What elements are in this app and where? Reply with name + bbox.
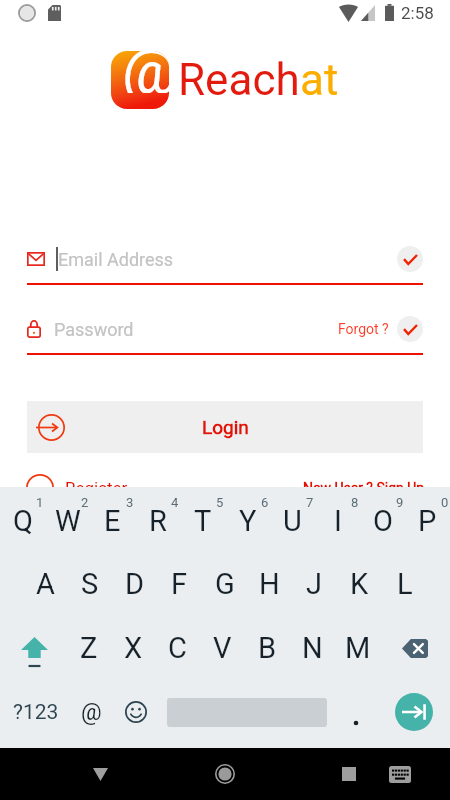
staticText: Y	[239, 504, 257, 538]
button[interactable]: T	[180, 489, 225, 552]
button[interactable]: Login	[27, 401, 423, 453]
staticText: at	[300, 54, 339, 106]
button[interactable]: I	[315, 489, 360, 552]
staticText: 7	[306, 495, 314, 510]
staticText: G	[215, 567, 235, 601]
staticText: F	[171, 567, 188, 601]
staticText: C	[168, 631, 187, 665]
staticText: Register	[65, 478, 128, 498]
staticText: 9	[396, 495, 404, 510]
staticText: P	[418, 504, 437, 538]
button[interactable]: P	[405, 489, 450, 552]
button[interactable]: K	[337, 552, 382, 616]
staticText: T	[194, 504, 212, 538]
button[interactable]: E	[90, 489, 135, 552]
staticText: 2	[81, 495, 89, 510]
button[interactable]: C	[155, 616, 200, 680]
button[interactable]: Emoji	[111, 680, 160, 744]
staticText: 1	[36, 495, 44, 510]
button[interactable]: F	[157, 552, 202, 616]
staticText: 3	[126, 495, 134, 510]
button[interactable]: Shift	[0, 616, 67, 680]
staticText: R	[149, 504, 167, 538]
button[interactable]: A	[23, 552, 67, 616]
staticText: N	[302, 631, 323, 665]
button[interactable]	[334, 680, 378, 744]
button[interactable]: N	[290, 616, 335, 680]
staticText: 4	[171, 495, 179, 510]
button[interactable]: New User ? Sign Up	[303, 480, 425, 496]
staticText: W	[55, 504, 81, 538]
button[interactable]: S	[67, 552, 112, 616]
staticText: Z	[80, 631, 98, 665]
staticText: S	[81, 567, 99, 601]
staticText: M	[345, 631, 371, 665]
button[interactable]: Q	[0, 489, 45, 552]
button[interactable]: X	[111, 616, 155, 680]
button[interactable]: ?123	[0, 680, 71, 744]
staticText: Q	[13, 504, 33, 538]
button[interactable]: Enter	[378, 680, 450, 744]
staticText: A	[36, 567, 55, 601]
button[interactable]: Switch keyboard	[375, 748, 425, 800]
staticText: V	[213, 631, 232, 665]
staticText: X	[124, 631, 143, 665]
staticText: 6	[261, 495, 269, 510]
button[interactable]: Space	[160, 680, 334, 744]
button[interactable]: Recent apps	[324, 748, 374, 800]
button[interactable]: B	[245, 616, 290, 680]
button[interactable]: V	[200, 616, 245, 680]
button[interactable]: @	[71, 680, 111, 744]
staticText: B	[258, 631, 277, 665]
staticText: ?123	[13, 700, 59, 725]
button[interactable]: Y	[225, 489, 270, 552]
button[interactable]: R	[135, 489, 180, 552]
staticText: H	[259, 567, 280, 601]
staticText: D	[125, 567, 145, 601]
button[interactable]: Z	[67, 616, 111, 680]
button[interactable]: G	[202, 552, 247, 616]
staticText: Password	[54, 319, 134, 340]
button[interactable]: H	[247, 552, 292, 616]
staticText: 2:58	[401, 3, 434, 23]
button[interactable]: L	[382, 552, 427, 616]
button[interactable]: Forgot ?	[336, 315, 391, 343]
staticText: Email Address	[58, 249, 174, 270]
staticText: Login	[202, 416, 249, 438]
staticText: J	[306, 567, 323, 601]
button[interactable]: D	[112, 552, 157, 616]
staticText: 5	[216, 495, 224, 510]
button[interactable]: Backspace	[380, 616, 450, 680]
staticText: U	[283, 504, 302, 538]
button[interactable]: Home	[200, 748, 250, 800]
staticText: O	[373, 504, 393, 538]
staticText: @	[122, 51, 169, 93]
staticText: E	[104, 504, 121, 538]
staticText: Reach	[178, 54, 300, 106]
staticText: K	[350, 567, 369, 601]
button[interactable]: O	[360, 489, 405, 552]
staticText: L	[397, 567, 413, 601]
staticText: Forgot ?	[338, 321, 389, 337]
button[interactable]: W	[45, 489, 90, 552]
button[interactable]: Back	[75, 748, 125, 800]
staticText: 8	[351, 495, 359, 510]
button[interactable]: U	[270, 489, 315, 552]
staticText: 0	[441, 495, 449, 510]
staticText: @	[81, 699, 102, 726]
button[interactable]: M	[335, 616, 380, 680]
button[interactable]: J	[292, 552, 337, 616]
staticText: I	[334, 504, 342, 538]
